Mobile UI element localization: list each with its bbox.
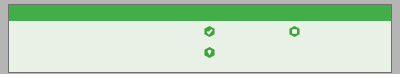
button[interactable]: Location <box>204 47 215 58</box>
button[interactable]: Stop <box>289 26 300 37</box>
button[interactable]: Verified <box>204 26 215 37</box>
